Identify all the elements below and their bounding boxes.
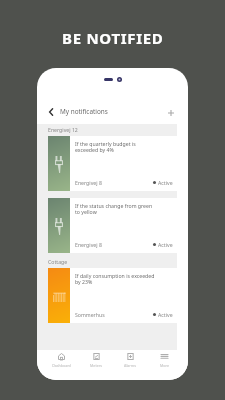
staticText: Energivej 8 [75,179,102,186]
button[interactable]: Add notification [162,104,180,122]
button[interactable]: If daily consumption is exceeded by 23% [48,268,177,323]
button[interactable]: Back [42,103,60,121]
staticText: Cottage [48,258,68,265]
button[interactable]: Alarms [113,350,147,368]
staticText: If the status change from green to yello… [75,202,153,215]
button[interactable]: Meters [79,350,113,368]
staticText: My notifications [60,107,108,116]
staticText: Meters [90,363,102,368]
staticText: Active [158,311,173,318]
button[interactable]: Dashboard [44,350,79,368]
staticText: Alarms [124,363,136,368]
staticText: Sommerhus [75,311,105,318]
staticText: Energivej 12 [48,126,78,133]
staticText: If the quarterly budget is exceeded by 4… [75,140,136,153]
button[interactable]: More [147,350,181,368]
button[interactable]: If the status change from green to yello… [48,198,177,253]
staticText: Dashboard [52,363,71,368]
staticText: Active [158,179,173,186]
staticText: Active [158,241,173,248]
staticText: BE NOTIFIED [62,28,164,48]
staticText: If daily consumption is exceeded by 23% [75,272,155,285]
staticText: More [160,363,169,368]
staticText: Energivej 8 [75,241,102,248]
button[interactable]: If the quarterly budget is exceeded by 4… [48,136,177,191]
